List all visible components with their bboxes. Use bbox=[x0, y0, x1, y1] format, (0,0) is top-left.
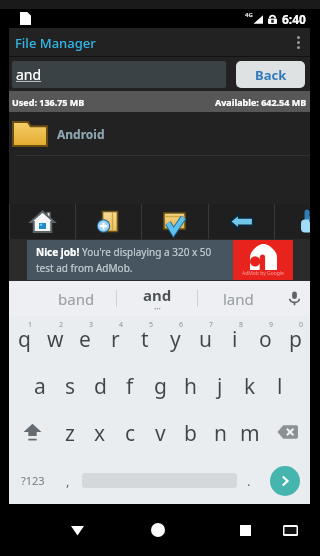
button[interactable]: f bbox=[115, 363, 145, 410]
button[interactable]: Touch mode bbox=[274, 204, 320, 239]
staticText: 9 bbox=[269, 320, 274, 330]
staticText: band bbox=[58, 289, 95, 309]
staticText: 4 bbox=[119, 320, 124, 330]
button[interactable]: 2 bbox=[40, 316, 70, 363]
staticText: c bbox=[125, 419, 136, 448]
staticText: Back bbox=[255, 66, 287, 84]
staticText: 3 bbox=[89, 320, 94, 330]
staticText: 1 bbox=[28, 320, 33, 330]
button[interactable]: z bbox=[55, 410, 85, 457]
staticText: x bbox=[94, 419, 106, 448]
button[interactable]: , bbox=[57, 457, 79, 504]
button[interactable]: a bbox=[24, 363, 55, 410]
button[interactable]: Back bbox=[208, 204, 274, 239]
button[interactable]: Select all bbox=[141, 204, 207, 239]
staticText: 6 bbox=[179, 320, 184, 330]
button[interactable]: 5 bbox=[130, 316, 160, 363]
button[interactable]: s bbox=[55, 363, 85, 410]
button[interactable]: Voice input bbox=[279, 281, 310, 316]
staticText: Nice job! bbox=[36, 245, 82, 259]
button[interactable]: n bbox=[205, 410, 235, 457]
staticText: u bbox=[199, 325, 212, 354]
staticText: b bbox=[184, 419, 197, 448]
staticText: y bbox=[170, 325, 181, 354]
button[interactable]: More options bbox=[286, 28, 310, 57]
staticText: h bbox=[184, 372, 197, 401]
button[interactable]: Backspace bbox=[265, 410, 310, 457]
button[interactable]: v bbox=[145, 410, 175, 457]
button[interactable]: j bbox=[205, 363, 235, 410]
staticText: a bbox=[34, 372, 46, 401]
staticText: and bbox=[16, 65, 42, 84]
staticText: i bbox=[232, 325, 238, 354]
button[interactable]: ?123 bbox=[9, 457, 57, 504]
button[interactable]: x bbox=[85, 410, 115, 457]
staticText: . bbox=[247, 472, 251, 490]
staticText: and bbox=[143, 285, 172, 305]
button[interactable]: Home bbox=[138, 510, 178, 550]
button[interactable]: Hide keyboard bbox=[57, 510, 97, 550]
button[interactable]: New folder bbox=[75, 204, 141, 239]
button[interactable]: band bbox=[36, 281, 117, 316]
button[interactable]: g bbox=[145, 363, 175, 410]
staticText: e bbox=[79, 325, 91, 354]
button[interactable]: b bbox=[175, 410, 205, 457]
button[interactable]: m bbox=[235, 410, 265, 457]
button[interactable]: AdMob ad bbox=[233, 240, 293, 280]
button[interactable]: 9 bbox=[250, 316, 280, 363]
button[interactable]: 4 bbox=[100, 316, 130, 363]
button[interactable]: Enter bbox=[259, 457, 310, 504]
staticText: r bbox=[111, 325, 120, 354]
staticText: l bbox=[277, 372, 283, 401]
button[interactable]: h bbox=[175, 363, 205, 410]
button[interactable]: Android bbox=[9, 112, 310, 155]
staticText: ••• bbox=[154, 305, 161, 313]
staticText: File Manager bbox=[15, 34, 96, 52]
staticText: k bbox=[244, 372, 256, 401]
button[interactable]: and bbox=[117, 281, 198, 316]
staticText: You're displaying a 320 x 50 bbox=[82, 245, 212, 259]
staticText: 7 bbox=[209, 320, 214, 330]
button[interactable]: 0 bbox=[280, 316, 310, 363]
staticText: o bbox=[259, 325, 272, 354]
staticText: ?123 bbox=[21, 473, 45, 488]
button[interactable]: Shift bbox=[9, 410, 55, 457]
staticText: f bbox=[126, 372, 134, 401]
staticText: Android bbox=[57, 126, 105, 142]
staticText: , bbox=[66, 472, 70, 490]
staticText: m bbox=[240, 419, 260, 448]
button[interactable]: 6 bbox=[160, 316, 190, 363]
staticText: test ad from AdMob. bbox=[36, 261, 133, 275]
button[interactable]: and bbox=[12, 61, 226, 88]
button[interactable]: land bbox=[198, 281, 279, 316]
staticText: 0 bbox=[299, 320, 304, 330]
staticText: t bbox=[141, 325, 149, 354]
staticText: p bbox=[289, 325, 302, 354]
button[interactable]: Back bbox=[236, 61, 305, 88]
staticText: land bbox=[223, 289, 254, 309]
button[interactable]: 7 bbox=[190, 316, 220, 363]
button[interactable]: 3 bbox=[70, 316, 100, 363]
button[interactable]: 1 bbox=[9, 316, 40, 363]
staticText: v bbox=[155, 419, 166, 448]
staticText: 2 bbox=[59, 320, 64, 330]
staticText: AdMob by Google bbox=[242, 270, 284, 277]
button[interactable]: Recents bbox=[225, 510, 265, 550]
staticText: 8 bbox=[239, 320, 244, 330]
staticText: Available: 642.54 MB bbox=[215, 96, 307, 108]
button[interactable]: Switch keyboard bbox=[272, 512, 308, 548]
staticText: z bbox=[65, 419, 75, 448]
staticText: q bbox=[18, 325, 31, 354]
staticText: 4G bbox=[245, 11, 253, 19]
button[interactable]: l bbox=[265, 363, 295, 410]
button[interactable]: d bbox=[85, 363, 115, 410]
button[interactable]: k bbox=[235, 363, 265, 410]
button[interactable]: 8 bbox=[220, 316, 250, 363]
button[interactable]: Space bbox=[79, 457, 239, 504]
button[interactable]: Home bbox=[9, 204, 75, 239]
button[interactable]: . bbox=[239, 457, 259, 504]
staticText: Used: 136.75 MB bbox=[12, 96, 85, 108]
staticText: 5 bbox=[149, 320, 154, 330]
button[interactable]: c bbox=[115, 410, 145, 457]
staticText: g bbox=[154, 372, 167, 401]
